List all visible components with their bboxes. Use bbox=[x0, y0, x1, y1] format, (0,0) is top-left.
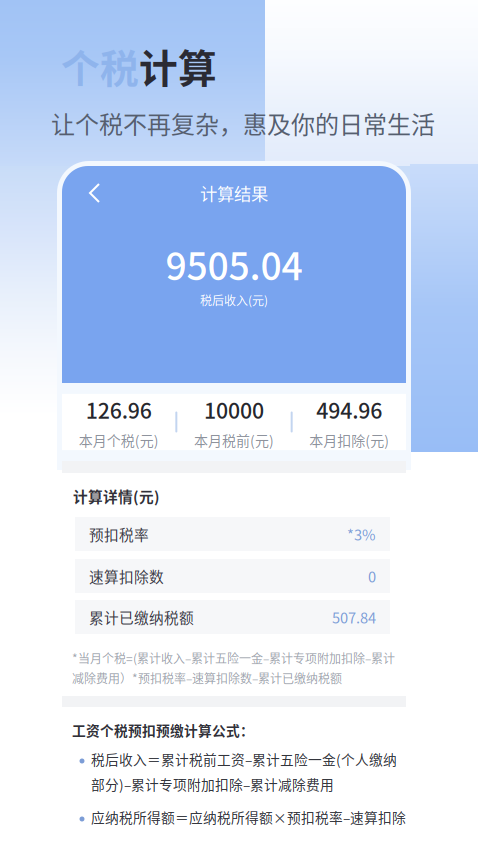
staticText: 预扣税率 bbox=[89, 523, 149, 545]
staticText: 0 bbox=[368, 565, 376, 587]
staticText: 工资个税预扣预缴计算公式： bbox=[72, 720, 254, 740]
staticText: 本月税前(元) bbox=[194, 430, 274, 450]
staticText: 应纳税所得额＝应纳税所得额×预扣税率–速算扣除 bbox=[91, 807, 406, 827]
staticText: 税后收入＝累计税前工资–累计五险一金(个人缴纳 bbox=[91, 749, 397, 769]
staticText: 减除费用）*预扣税率–速算扣除数–累计已缴纳税额 bbox=[72, 669, 342, 687]
button[interactable]: 累计已缴纳税额 bbox=[75, 600, 390, 634]
staticText: *当月个税=(累计收入–累计五险一金–累计专项附加扣除–累计 bbox=[72, 649, 395, 667]
button[interactable]: 返回 bbox=[80, 180, 110, 206]
staticText: *3% bbox=[347, 523, 376, 545]
staticText: 税后收入(元) bbox=[200, 291, 268, 309]
staticText: 10000 bbox=[204, 394, 264, 425]
button[interactable]: 速算扣除数 bbox=[75, 559, 390, 593]
staticText: 累计已缴纳税额 bbox=[89, 606, 194, 628]
button[interactable]: 预扣税率 bbox=[75, 517, 390, 551]
staticText: 计算详情(元) bbox=[73, 485, 160, 507]
staticText: 9505.04 bbox=[165, 237, 302, 291]
staticText: 本月个税(元) bbox=[79, 430, 159, 450]
staticText: 126.96 bbox=[86, 394, 152, 425]
staticText: 494.96 bbox=[316, 394, 382, 425]
staticText: 507.84 bbox=[332, 606, 376, 628]
staticText: 部分)–累计专项附加扣除–累计减除费用 bbox=[91, 774, 334, 794]
staticText: 个税 bbox=[61, 38, 139, 94]
staticText: 本月扣除(元) bbox=[309, 430, 389, 450]
staticText: 让个税不再复杂，惠及你的日常生活 bbox=[51, 106, 435, 140]
staticText: 计算结果 bbox=[200, 180, 268, 206]
staticText: 速算扣除数 bbox=[89, 565, 164, 587]
staticText: 计算 bbox=[139, 38, 217, 94]
